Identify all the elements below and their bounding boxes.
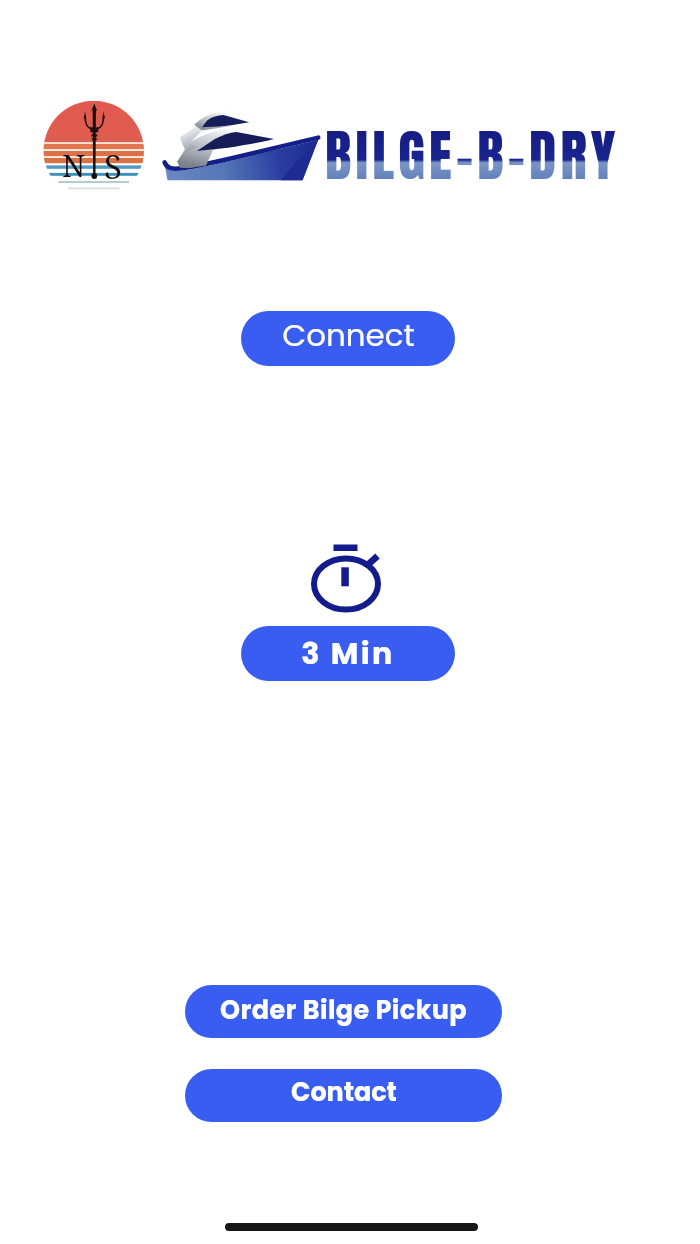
button[interactable]: Order Bilge Pickup bbox=[185, 985, 502, 1038]
button[interactable]: Connect bbox=[241, 311, 455, 366]
staticText: Connect bbox=[282, 314, 415, 357]
staticText: Contact bbox=[291, 1074, 397, 1110]
button[interactable]: 3 Min bbox=[241, 626, 455, 681]
staticText: N bbox=[62, 144, 86, 186]
staticText: Order Bilge Pickup bbox=[220, 992, 467, 1028]
other: Timer bbox=[310, 536, 382, 614]
staticText: S bbox=[104, 144, 122, 189]
staticText: BILGE-B-DRY bbox=[325, 114, 620, 197]
button[interactable]: Contact bbox=[185, 1069, 502, 1122]
staticText: 3 Min bbox=[301, 632, 395, 674]
